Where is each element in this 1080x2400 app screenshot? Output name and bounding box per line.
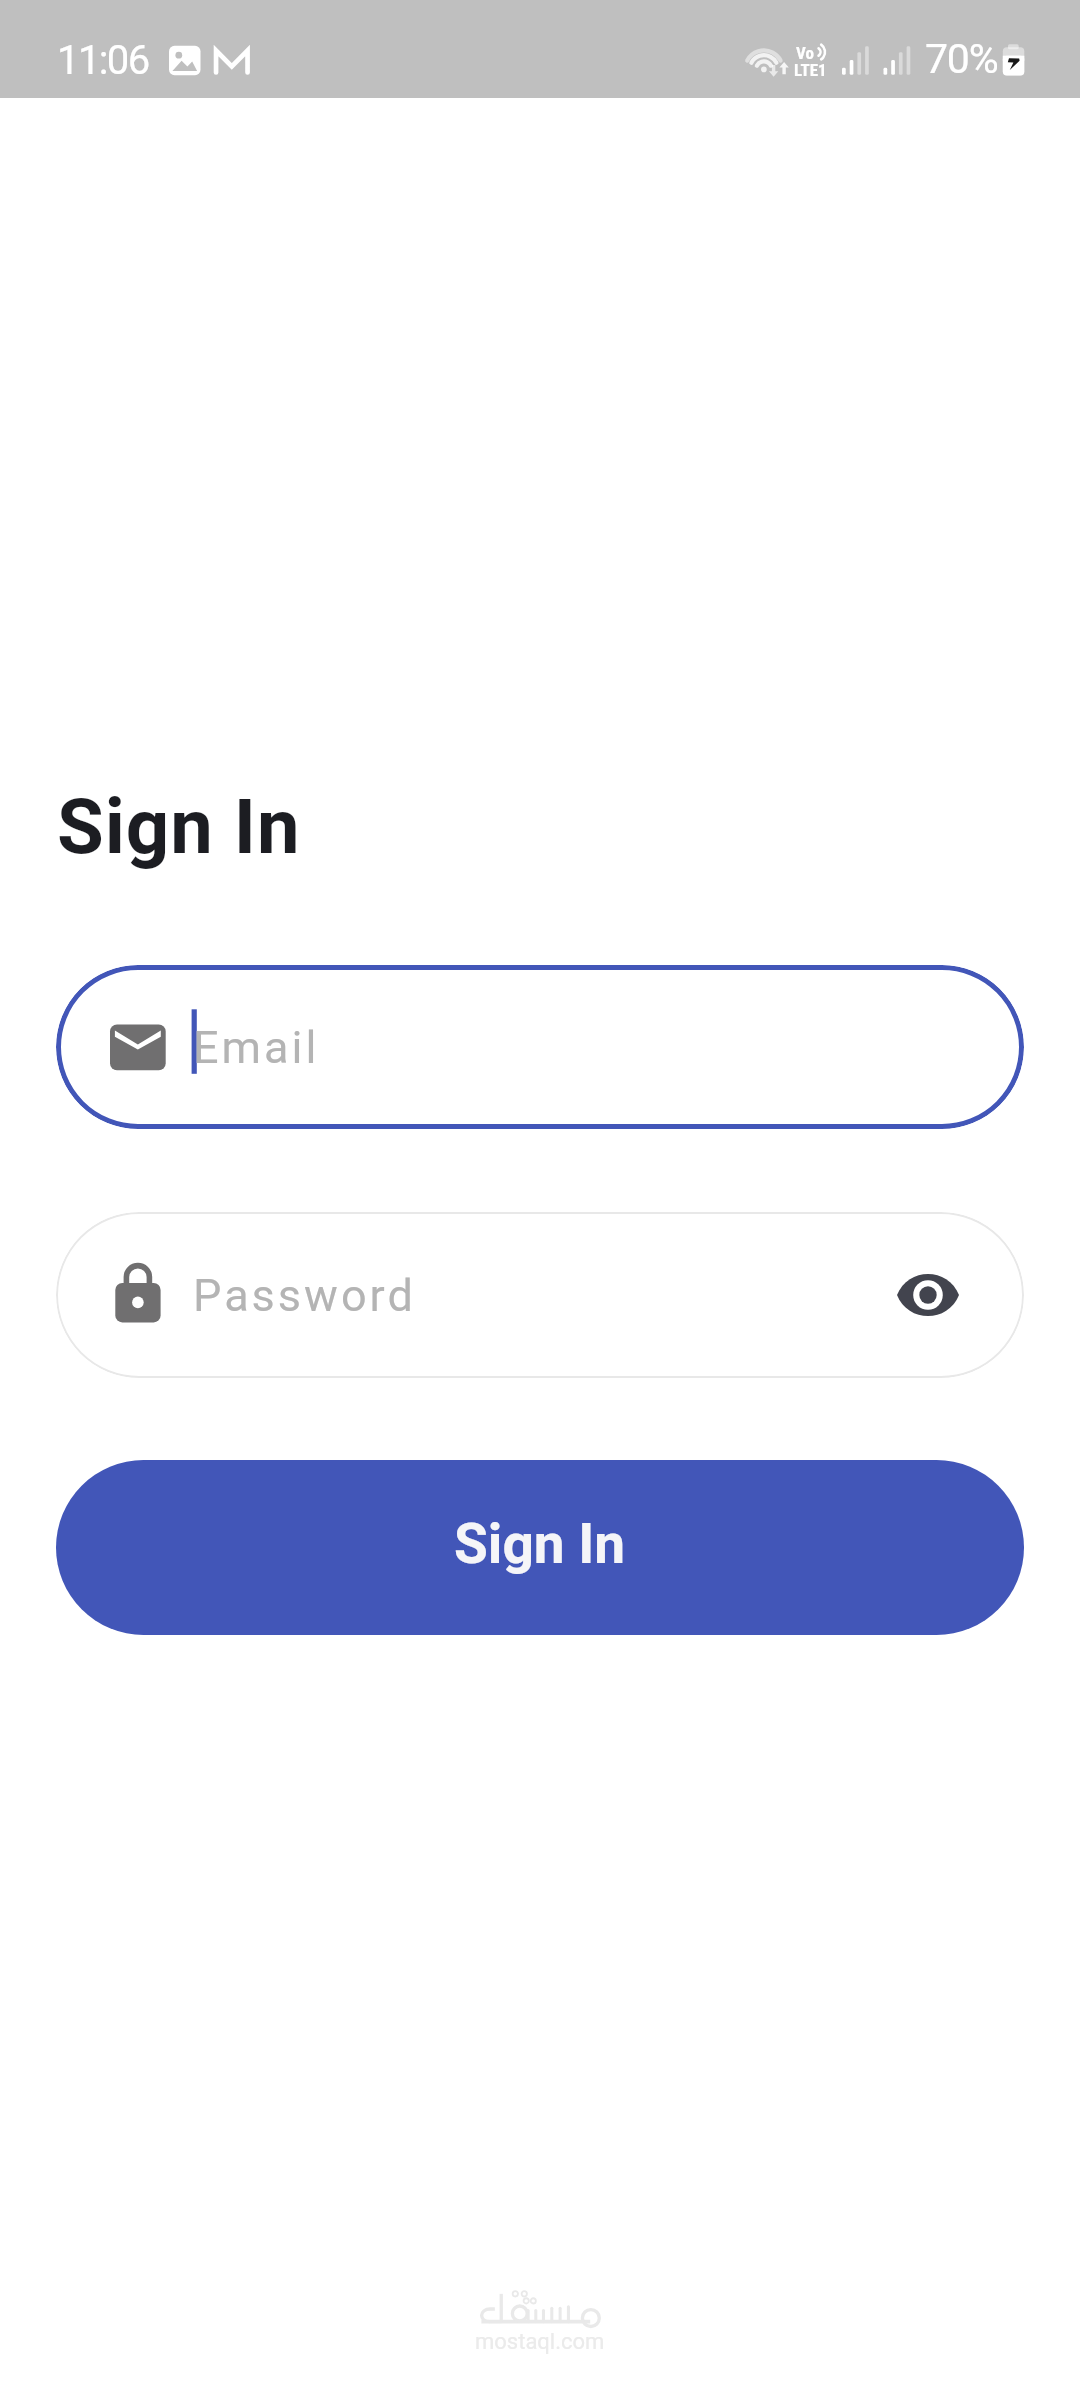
staticText: Sign In	[454, 1512, 626, 1576]
button[interactable]: Show password	[884, 1251, 972, 1339]
staticText: Email	[193, 1021, 320, 1074]
staticText: mostaql.com	[475, 2329, 605, 2355]
staticText: Vo	[796, 43, 814, 63]
staticText: Password	[193, 1269, 416, 1322]
button[interactable]: Email	[56, 965, 1024, 1129]
staticText: 70%	[925, 35, 998, 83]
staticText: LTE1	[794, 60, 827, 80]
button[interactable]: Password	[56, 1212, 1024, 1378]
button[interactable]: Sign In	[56, 1460, 1024, 1635]
staticText: Sign In	[57, 782, 301, 871]
staticText: 11:06	[57, 37, 149, 84]
